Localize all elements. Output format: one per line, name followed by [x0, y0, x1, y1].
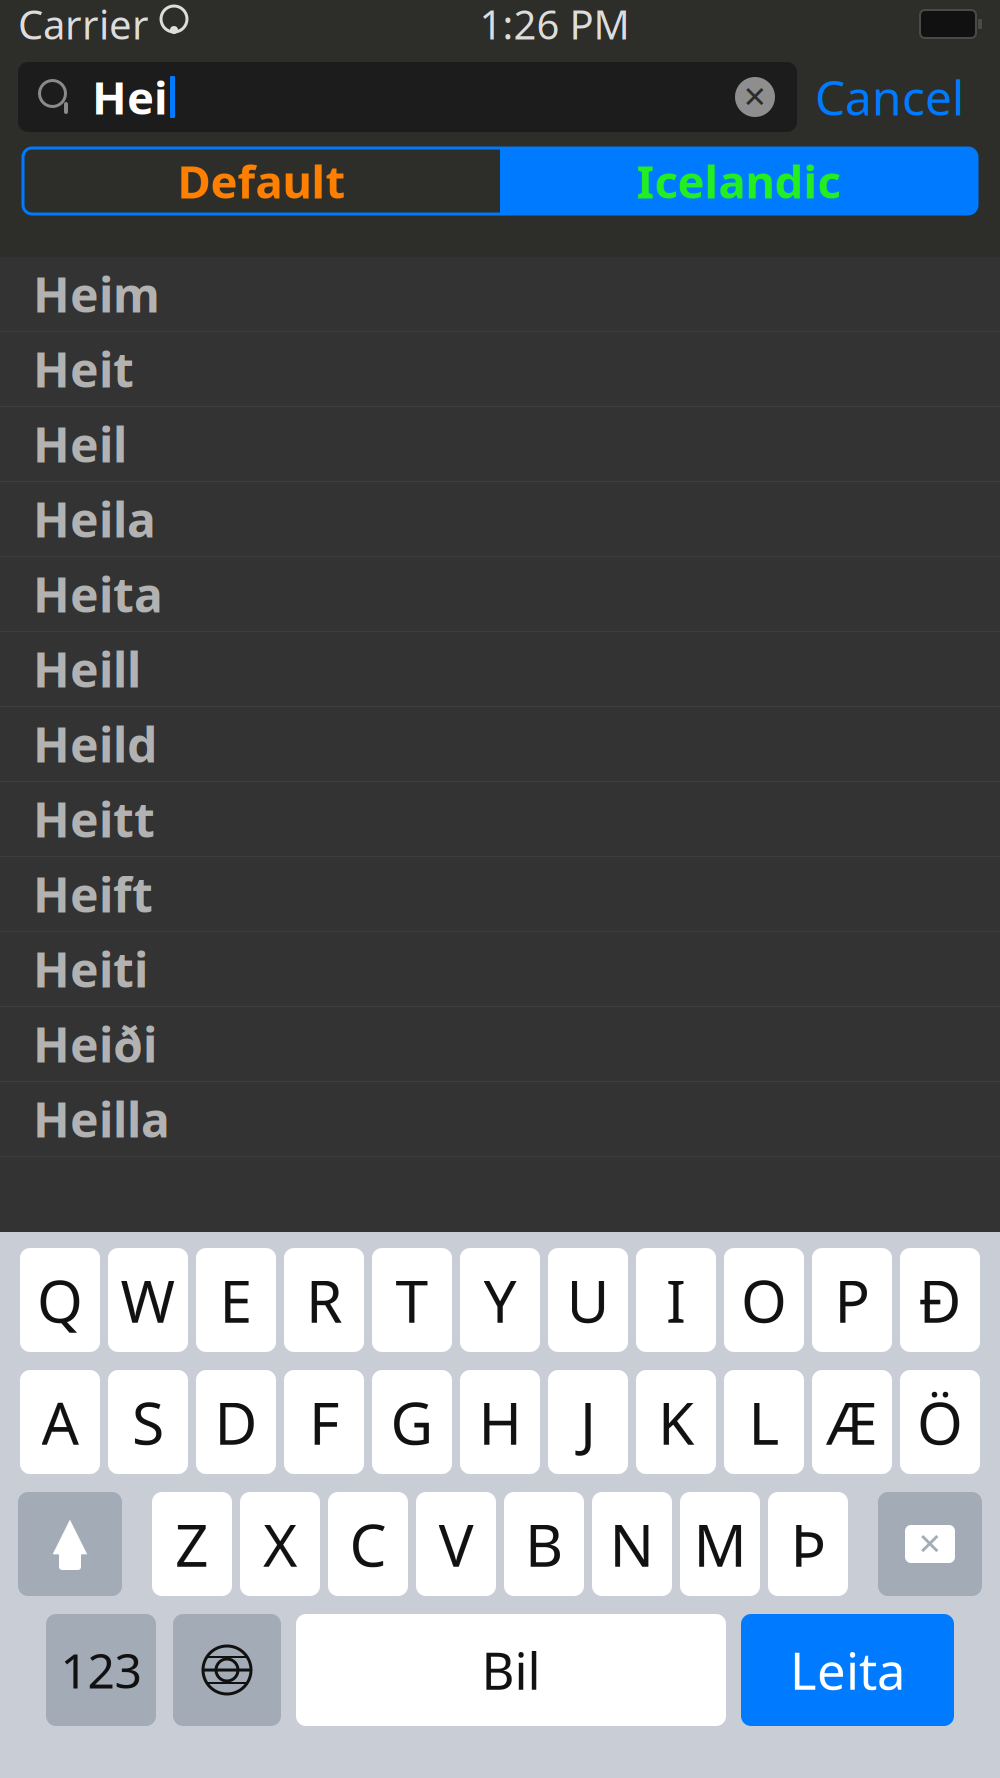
- button[interactable]: L: [724, 1370, 804, 1474]
- staticText: U: [566, 1261, 609, 1339]
- button[interactable]: Hei: [18, 62, 797, 132]
- staticText: T: [395, 1261, 428, 1339]
- staticText: Carrier: [18, 0, 149, 50]
- button[interactable]: Heit: [0, 332, 1000, 406]
- staticText: Cancel: [815, 65, 964, 129]
- staticText: Heil: [33, 412, 127, 476]
- staticText: Heift: [33, 862, 153, 926]
- button[interactable]: P: [812, 1248, 892, 1352]
- button[interactable]: R: [284, 1248, 364, 1352]
- staticText: E: [219, 1261, 252, 1339]
- button[interactable]: Icelandic: [500, 148, 977, 214]
- button[interactable]: Delete: [878, 1492, 982, 1596]
- staticText: ✕: [742, 80, 767, 114]
- button[interactable]: 123: [46, 1614, 156, 1726]
- staticText: Leita: [790, 1636, 905, 1704]
- staticText: Æ: [826, 1383, 878, 1461]
- staticText: M: [693, 1505, 746, 1583]
- button[interactable]: Heita: [0, 557, 1000, 631]
- staticText: Default: [177, 151, 345, 211]
- button[interactable]: Heill: [0, 632, 1000, 706]
- button[interactable]: U: [548, 1248, 628, 1352]
- staticText: I: [666, 1261, 686, 1339]
- staticText: Q: [37, 1261, 83, 1339]
- button[interactable]: E: [196, 1248, 276, 1352]
- button[interactable]: H: [460, 1370, 540, 1474]
- staticText: K: [658, 1383, 694, 1461]
- button[interactable]: Heiti: [0, 932, 1000, 1006]
- button[interactable]: X: [240, 1492, 320, 1596]
- button[interactable]: K: [636, 1370, 716, 1474]
- staticText: Heiði: [33, 1012, 157, 1076]
- button[interactable]: Next keyboard: [173, 1614, 281, 1726]
- button[interactable]: N: [592, 1492, 672, 1596]
- staticText: Ö: [917, 1383, 963, 1461]
- button[interactable]: Heiði: [0, 1007, 1000, 1081]
- staticText: Heilla: [33, 1087, 170, 1151]
- button[interactable]: Bil: [296, 1614, 726, 1726]
- staticText: L: [748, 1383, 779, 1461]
- staticText: Heiti: [33, 937, 148, 1001]
- button[interactable]: Heila: [0, 482, 1000, 556]
- staticText: J: [580, 1383, 596, 1461]
- staticText: ▲: [52, 1507, 87, 1559]
- button[interactable]: Q: [20, 1248, 100, 1352]
- button[interactable]: O: [724, 1248, 804, 1352]
- staticText: Þ: [790, 1505, 825, 1583]
- button[interactable]: Z: [152, 1492, 232, 1596]
- staticText: Hei: [92, 67, 168, 127]
- button[interactable]: Þ: [768, 1492, 848, 1596]
- button[interactable]: Æ: [812, 1370, 892, 1474]
- button[interactable]: V: [416, 1492, 496, 1596]
- staticText: P: [834, 1261, 869, 1339]
- button[interactable]: S: [108, 1370, 188, 1474]
- button[interactable]: Heild: [0, 707, 1000, 781]
- button[interactable]: A: [20, 1370, 100, 1474]
- button[interactable]: Heilla: [0, 1082, 1000, 1156]
- button[interactable]: B: [504, 1492, 584, 1596]
- button[interactable]: Heil: [0, 407, 1000, 481]
- button[interactable]: Y: [460, 1248, 540, 1352]
- button[interactable]: Heim: [0, 257, 1000, 331]
- button[interactable]: M: [680, 1492, 760, 1596]
- staticText: H: [478, 1383, 521, 1461]
- staticText: Ð: [918, 1261, 961, 1339]
- staticText: A: [41, 1383, 78, 1461]
- button[interactable]: F: [284, 1370, 364, 1474]
- staticText: B: [525, 1505, 563, 1583]
- staticText: G: [390, 1383, 433, 1461]
- button[interactable]: G: [372, 1370, 452, 1474]
- staticText: V: [438, 1505, 473, 1583]
- button[interactable]: Ö: [900, 1370, 980, 1474]
- staticText: S: [132, 1383, 164, 1461]
- staticText: Heit: [33, 337, 134, 401]
- staticText: Icelandic: [636, 151, 840, 211]
- button[interactable]: J: [548, 1370, 628, 1474]
- button[interactable]: W: [108, 1248, 188, 1352]
- button[interactable]: Leita: [741, 1614, 954, 1726]
- button[interactable]: Shift: [18, 1492, 122, 1596]
- staticText: Z: [175, 1505, 209, 1583]
- staticText: 1:26 PM: [479, 0, 629, 50]
- staticText: D: [214, 1383, 257, 1461]
- staticText: 123: [60, 1638, 141, 1702]
- staticText: Heild: [33, 712, 157, 776]
- button[interactable]: Heift: [0, 857, 1000, 931]
- button[interactable]: C: [328, 1492, 408, 1596]
- button[interactable]: T: [372, 1248, 452, 1352]
- staticText: ✕: [917, 1527, 942, 1561]
- staticText: Heila: [33, 487, 156, 551]
- staticText: O: [741, 1261, 787, 1339]
- button[interactable]: D: [196, 1370, 276, 1474]
- button[interactable]: Ð: [900, 1248, 980, 1352]
- staticText: N: [609, 1505, 654, 1583]
- button[interactable]: I: [636, 1248, 716, 1352]
- button[interactable]: Heitt: [0, 782, 1000, 856]
- staticText: Y: [483, 1261, 516, 1339]
- staticText: W: [120, 1261, 175, 1339]
- staticText: F: [309, 1383, 339, 1461]
- staticText: Heill: [33, 637, 141, 701]
- button[interactable]: Cancel: [797, 62, 982, 132]
- staticText: Bil: [481, 1636, 540, 1704]
- button[interactable]: Default: [23, 148, 500, 214]
